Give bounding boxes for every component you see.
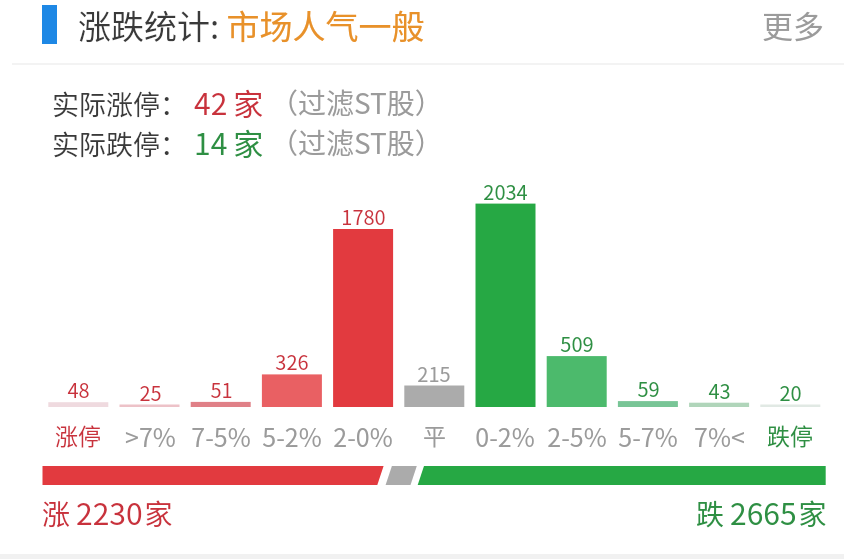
button[interactable]: 2-0% [333, 418, 393, 448]
button[interactable]: 涨跌统计: 市场人气一般 [0, 0, 425, 49]
staticText: 1780 [341, 202, 386, 231]
staticText: 涨停 [55, 418, 101, 448]
button[interactable]: 7%< [689, 418, 749, 448]
staticText: （过滤ST股） [270, 82, 443, 123]
staticText: 涨 2230 家 [42, 490, 173, 533]
staticText: 5-2% [262, 418, 322, 448]
staticText: 2-5% [547, 418, 607, 448]
staticText: 14 家 [194, 120, 264, 163]
staticText: 509 [560, 329, 594, 358]
button[interactable]: 更多 [754, 0, 832, 49]
staticText: 7-5% [191, 418, 251, 448]
staticText: 实际跌停： [52, 124, 187, 163]
staticText: 7%< [694, 418, 745, 448]
staticText: 平 [423, 418, 446, 448]
staticText: 43 [708, 376, 731, 405]
button[interactable]: 涨停 [48, 418, 108, 448]
staticText: 51 [210, 375, 233, 404]
staticText: 25 [139, 378, 162, 407]
button[interactable]: >7% [120, 418, 180, 448]
button[interactable]: 跌停 [760, 418, 820, 448]
button[interactable]: 5-7% [618, 418, 678, 448]
button[interactable]: 0-2% [475, 418, 535, 448]
staticText: 20 [779, 378, 802, 407]
staticText: 跌 2665 家 [696, 490, 827, 533]
staticText: 326 [275, 347, 309, 376]
button[interactable]: 2-5% [547, 418, 607, 448]
button[interactable]: 5-2% [262, 418, 322, 448]
staticText: 2034 [483, 177, 528, 206]
staticText: 42 家 [194, 80, 264, 123]
staticText: （过滤ST股） [270, 122, 443, 163]
staticText: 0-2% [475, 418, 535, 448]
staticText: 实际涨停： [52, 84, 187, 123]
staticText: 48 [67, 375, 90, 404]
staticText: 2-0% [333, 418, 393, 448]
button[interactable]: 平 [404, 418, 464, 448]
staticText: 跌停 [767, 418, 813, 448]
staticText: 更多 [762, 2, 824, 47]
staticText: 59 [637, 374, 660, 403]
staticText: >7% [125, 418, 176, 448]
staticText: 涨跌统计: 市场人气一般 [78, 1, 425, 49]
button[interactable]: 7-5% [191, 418, 251, 448]
staticText: 5-7% [618, 418, 678, 448]
staticText: 215 [417, 359, 451, 388]
